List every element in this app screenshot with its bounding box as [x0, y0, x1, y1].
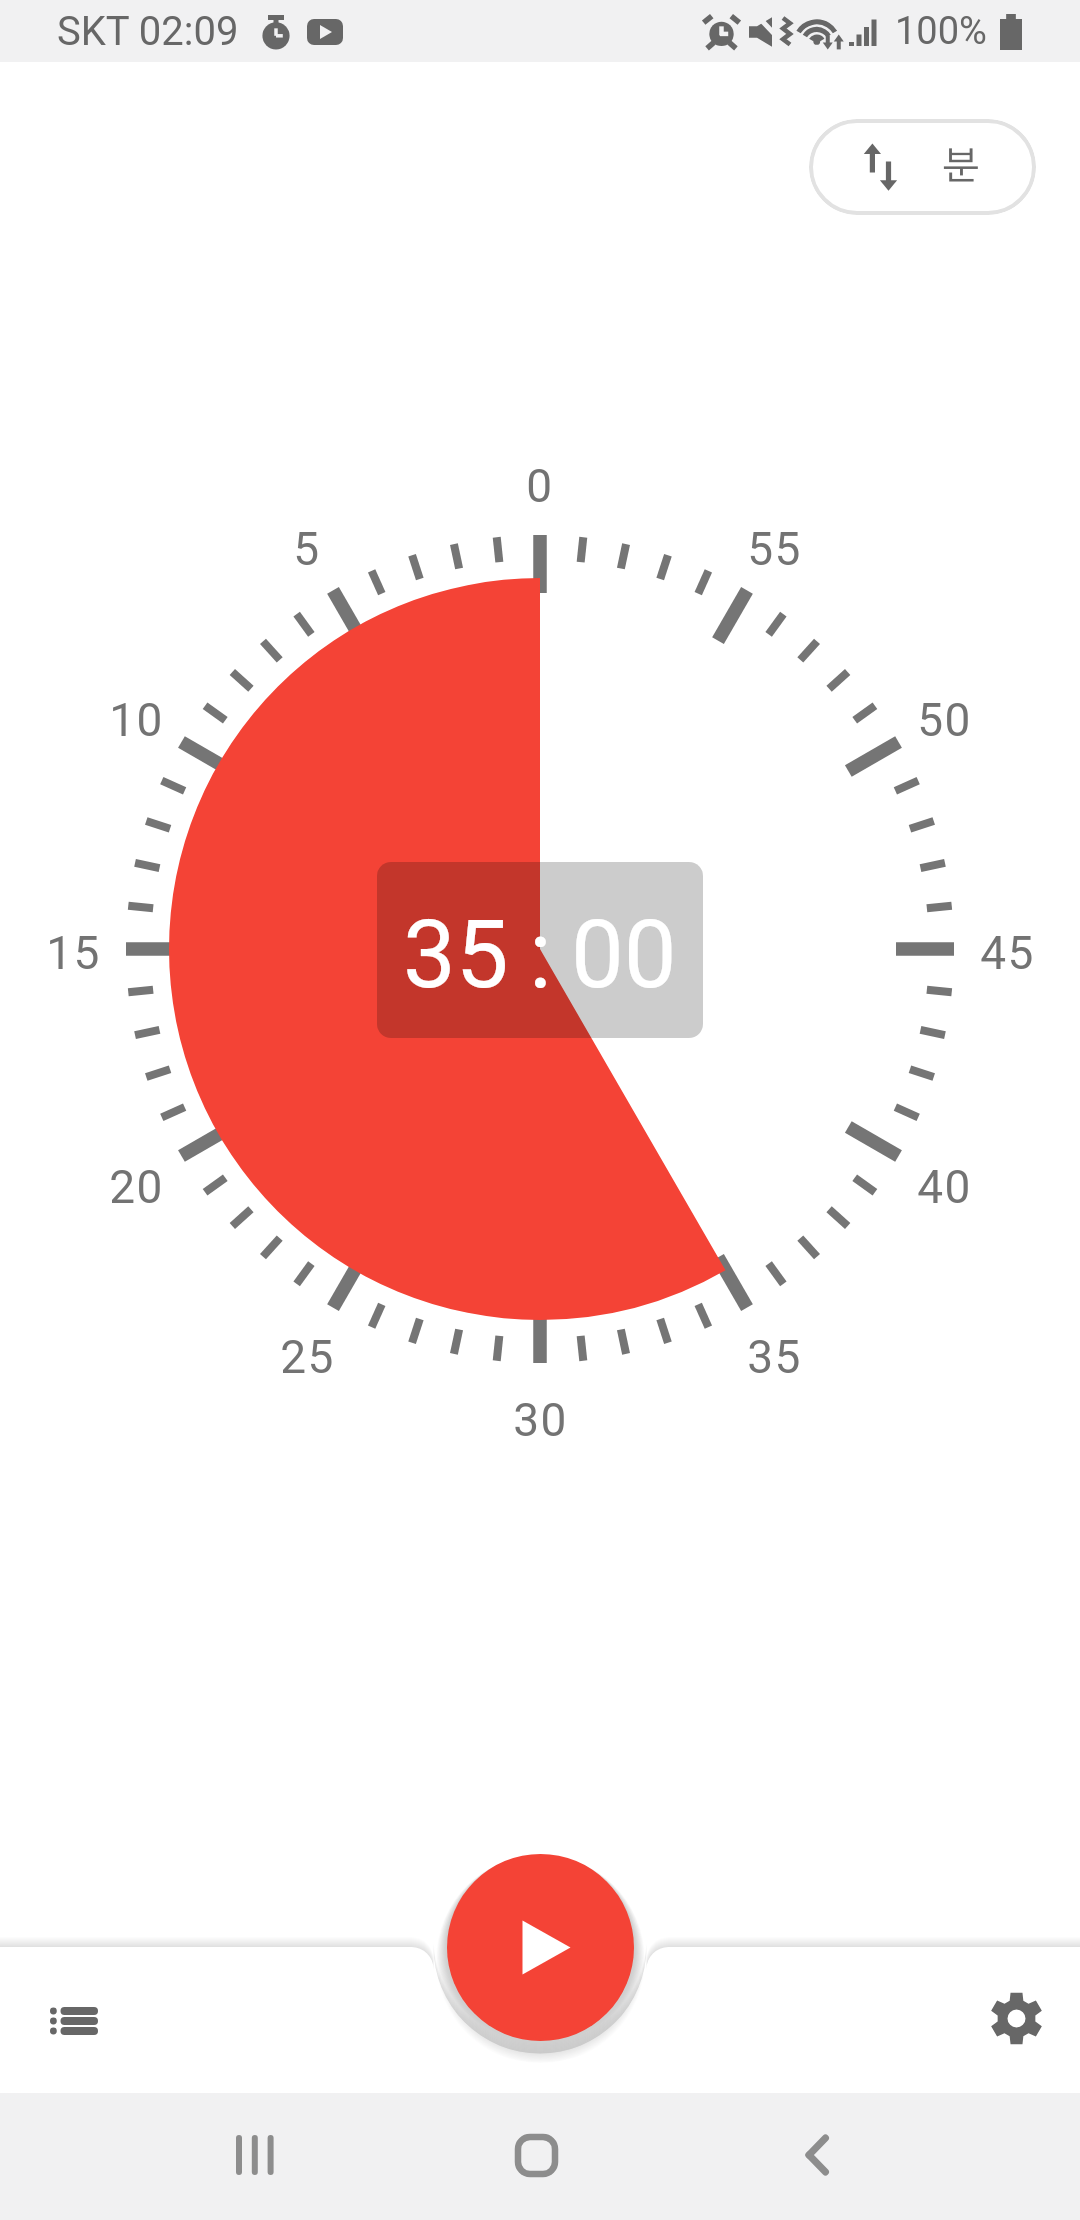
staticText: 35: [403, 900, 509, 1010]
staticText: 100%: [895, 9, 987, 54]
button[interactable]: 분: [809, 119, 1036, 215]
button[interactable]: Timer list: [33, 1981, 113, 2061]
staticText: 55: [747, 522, 802, 576]
staticText: 5: [293, 522, 321, 576]
button[interactable]: Settings: [976, 1978, 1056, 2058]
staticText: 0: [526, 459, 554, 513]
staticText: SKT 02:09: [57, 8, 239, 55]
staticText: 15: [46, 926, 101, 980]
staticText: 50: [917, 693, 972, 747]
staticText: 45: [980, 926, 1035, 980]
staticText: 25: [280, 1330, 335, 1384]
button[interactable]: Start timer: [425, 1832, 656, 2063]
staticText: 35: [747, 1330, 802, 1384]
staticText: 20: [109, 1160, 164, 1214]
staticText: 40: [917, 1160, 972, 1214]
staticText: 분: [942, 148, 980, 187]
staticText: 10: [109, 693, 164, 747]
staticText: 30: [513, 1393, 568, 1447]
staticText: :: [529, 900, 552, 1010]
staticText: 00: [571, 900, 677, 1010]
